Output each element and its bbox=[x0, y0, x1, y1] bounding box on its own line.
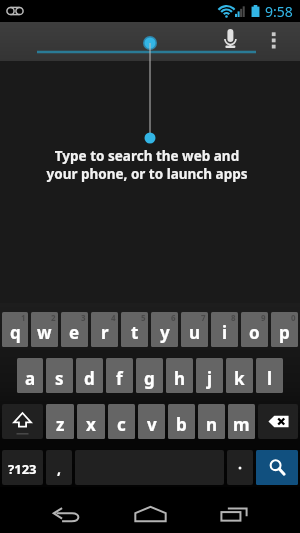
staticText: u bbox=[189, 321, 201, 344]
button[interactable]: z bbox=[46, 404, 74, 439]
button[interactable]: e bbox=[61, 312, 88, 347]
button[interactable]: Backspace bbox=[258, 404, 298, 439]
button[interactable]: Search bbox=[256, 450, 298, 485]
staticText: w bbox=[37, 321, 52, 344]
staticText: Type to search the web and your phone, o… bbox=[46, 147, 248, 183]
staticText: j bbox=[207, 367, 213, 390]
button[interactable]: s bbox=[46, 358, 73, 393]
button[interactable]: ?123 bbox=[2, 450, 43, 485]
button[interactable]: q bbox=[2, 312, 28, 347]
staticText: m bbox=[233, 413, 250, 436]
staticText: q bbox=[10, 321, 21, 344]
button[interactable]: d bbox=[76, 358, 103, 393]
button[interactable]: Recent apps bbox=[192, 487, 276, 533]
staticText: y bbox=[160, 321, 170, 344]
staticText: h bbox=[174, 367, 186, 390]
button[interactable]: f bbox=[106, 358, 133, 393]
staticText: 6 bbox=[171, 312, 176, 323]
staticText: 9:58 bbox=[265, 2, 293, 21]
button[interactable]: m bbox=[228, 404, 255, 439]
button[interactable]: t bbox=[121, 312, 148, 347]
staticText: o bbox=[249, 321, 260, 344]
staticText: l bbox=[267, 367, 273, 390]
staticText: 0 bbox=[291, 312, 296, 323]
button[interactable]: l bbox=[256, 358, 283, 393]
staticText: b bbox=[176, 413, 187, 436]
button[interactable]: p bbox=[271, 312, 298, 347]
button[interactable]: x bbox=[77, 404, 105, 439]
staticText: s bbox=[55, 367, 64, 390]
button[interactable]: a bbox=[17, 358, 43, 393]
staticText: 5 bbox=[141, 312, 146, 323]
button[interactable]: g bbox=[136, 358, 163, 393]
staticText: z bbox=[56, 413, 65, 436]
staticText: 4 bbox=[111, 312, 116, 323]
staticText: ?123 bbox=[8, 460, 37, 478]
other: Shift bbox=[2, 404, 43, 439]
other: Backspace bbox=[268, 415, 289, 428]
staticText: 3 bbox=[81, 312, 86, 323]
staticText: c bbox=[117, 413, 126, 436]
staticText: 1 bbox=[21, 312, 26, 323]
button[interactable] bbox=[227, 450, 253, 485]
staticText: e bbox=[69, 321, 80, 344]
button[interactable]: u bbox=[181, 312, 208, 347]
button[interactable]: b bbox=[168, 404, 195, 439]
staticText: r bbox=[101, 321, 109, 344]
staticText: f bbox=[116, 367, 123, 390]
staticText: 8 bbox=[231, 312, 236, 323]
staticText: a bbox=[25, 367, 36, 390]
button[interactable]: h bbox=[166, 358, 193, 393]
staticText: n bbox=[206, 413, 218, 436]
staticText: 9 bbox=[261, 312, 266, 323]
button[interactable]: More options bbox=[262, 22, 286, 61]
button[interactable]: , bbox=[46, 450, 72, 485]
button[interactable]: i bbox=[211, 312, 238, 347]
staticText: p bbox=[279, 321, 290, 344]
staticText: t bbox=[131, 321, 139, 344]
button[interactable]: o bbox=[241, 312, 268, 347]
button[interactable]: Shift bbox=[2, 404, 43, 439]
staticText: g bbox=[144, 367, 155, 390]
button[interactable]: c bbox=[108, 404, 135, 439]
staticText: 7 bbox=[201, 312, 206, 323]
staticText: d bbox=[84, 367, 95, 390]
button[interactable]: v bbox=[138, 404, 165, 439]
staticText: x bbox=[86, 413, 96, 436]
button[interactable]: w bbox=[31, 312, 58, 347]
button[interactable]: Voice search bbox=[216, 22, 244, 50]
staticText: v bbox=[147, 413, 157, 436]
staticText: i bbox=[222, 321, 228, 344]
button[interactable]: Back bbox=[24, 487, 108, 533]
staticText: k bbox=[234, 367, 245, 390]
button[interactable]: Home bbox=[108, 487, 192, 533]
staticText: 2 bbox=[51, 312, 56, 323]
staticText: , bbox=[57, 459, 61, 478]
button[interactable]: r bbox=[91, 312, 118, 347]
button[interactable]: j bbox=[196, 358, 223, 393]
button[interactable]: k bbox=[226, 358, 253, 393]
button[interactable]: y bbox=[151, 312, 178, 347]
button[interactable]: n bbox=[198, 404, 225, 439]
